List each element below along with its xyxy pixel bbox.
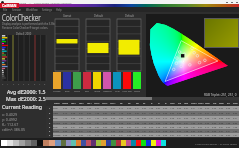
staticText: 0 [2, 83, 4, 86]
button[interactable]: Blue [62, 72, 72, 94]
staticText: 0.62 [79, 126, 84, 129]
staticText: 1.25 [79, 122, 84, 125]
button[interactable]: 100% Red [122, 72, 132, 94]
staticText: 0.35 [205, 122, 210, 125]
button[interactable] [117, 19, 141, 71]
staticText: 0.35 [111, 117, 116, 120]
staticText: Orange [53, 134, 61, 137]
staticText: 0.40 [205, 107, 210, 110]
button[interactable]: 7 [46, 133, 239, 137]
staticText: Session [12, 8, 22, 12]
staticText: 1.51 [198, 112, 203, 115]
staticText: 1.76 [119, 112, 124, 115]
staticText: G [158, 102, 160, 105]
staticText: 0.62 [127, 134, 132, 137]
staticText: Wht y [198, 102, 204, 105]
staticText: 0.97 [127, 126, 132, 129]
staticText: 0.48 [163, 130, 168, 133]
staticText: Help [56, 8, 62, 12]
staticText: 0.31 [219, 126, 224, 129]
staticText: File [3, 8, 8, 12]
button[interactable]: Settings [40, 8, 54, 12]
staticText: 6 [34, 83, 36, 86]
staticText: 0.97 [170, 134, 175, 137]
staticText: 2.14 [212, 112, 217, 115]
staticText: 0.93 [135, 130, 140, 133]
staticText: 1.33 [87, 130, 92, 133]
staticText: 0.52 [212, 122, 217, 125]
staticText: Blue Flower [53, 126, 61, 129]
staticText: Blue Sky [53, 117, 61, 120]
staticText: 0.48 [111, 134, 116, 137]
button[interactable] [86, 19, 110, 71]
staticText: Wht x [191, 102, 197, 105]
staticText: 0.97 [71, 130, 76, 133]
button[interactable]: 6 [46, 129, 239, 133]
staticText: 1.33 [149, 112, 154, 115]
staticText: 0.48 [63, 126, 68, 129]
staticText: Yellow [94, 90, 101, 93]
staticText: Default [94, 14, 103, 18]
staticText: 0.52 [71, 107, 76, 110]
staticText: 0.28 [219, 122, 224, 125]
staticText: 1.76 [111, 126, 116, 129]
staticText: dE [120, 102, 123, 105]
staticText: Cyan [115, 90, 120, 93]
staticText: Dark Skin [53, 107, 61, 110]
button[interactable]: 4 [46, 121, 239, 125]
staticText: 1.08 [87, 126, 92, 129]
staticText: 2.14 [163, 117, 168, 120]
staticText: 0.48 [71, 112, 76, 115]
staticText: 2 [49, 112, 51, 115]
button[interactable]: Help [54, 8, 64, 12]
staticText: 0.77 [205, 112, 210, 115]
staticText: 0.35 [163, 112, 168, 115]
staticText: 0.97 [177, 122, 182, 125]
button[interactable]: 2 [46, 111, 239, 116]
staticText: 1.76 [170, 107, 175, 110]
button[interactable]: 3 [46, 116, 239, 121]
button[interactable]: Green [72, 72, 82, 94]
staticText: 0.41 [177, 134, 182, 137]
staticText: 0.31 [170, 130, 175, 133]
button[interactable]: Session [10, 8, 24, 12]
button[interactable]: Close [234, 0, 239, 4]
button[interactable]: Maximize [229, 0, 234, 4]
staticText: 0.29 [156, 122, 161, 125]
staticText: 0.52 [119, 117, 124, 120]
staticText: 1.33 [95, 117, 100, 120]
button[interactable]: CalMAN [0, 3, 19, 8]
staticText: Green [74, 90, 81, 93]
button[interactable]: 5 [46, 125, 239, 129]
button[interactable]: Yellow [92, 72, 102, 94]
button[interactable]: Orange [52, 72, 62, 94]
staticText: 0.52 [111, 130, 116, 133]
staticText: 2.14 [63, 112, 68, 115]
staticText: 0.40 [191, 134, 196, 137]
button[interactable] [55, 19, 79, 71]
staticText: 4 [23, 83, 25, 86]
button[interactable]: Magenta [102, 72, 112, 94]
staticText: 0.41 [233, 117, 238, 120]
staticText: 0.97 [79, 117, 84, 120]
staticText: dC [128, 102, 131, 105]
button[interactable]: Workflow [24, 8, 40, 12]
staticText: RGB Triplet: 251, 251, 0 [204, 93, 237, 97]
staticText: ColorChecker [2, 12, 41, 24]
button[interactable]: File [1, 8, 10, 12]
staticText: 0.28 [177, 112, 182, 115]
button[interactable]: Green [132, 72, 142, 94]
staticText: Default [125, 14, 134, 18]
staticText: Orange [53, 90, 61, 93]
staticText: 0.55 [177, 107, 182, 110]
staticText: 1.51 [95, 122, 100, 125]
button[interactable]: Minimize [224, 0, 229, 4]
button[interactable]: 1 [46, 106, 239, 111]
staticText: 0.93 [233, 122, 238, 125]
staticText: 1.76 [205, 130, 210, 133]
staticText: 1.51 [103, 107, 108, 110]
staticText: 0.40 [149, 126, 154, 129]
button[interactable]: Cyan [112, 72, 122, 94]
button[interactable]: Red [82, 72, 92, 94]
